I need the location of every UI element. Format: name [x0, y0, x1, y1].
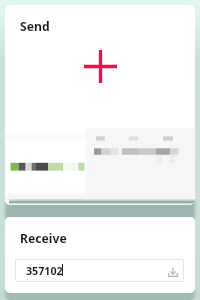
- staticText: Send: [20, 18, 50, 35]
- staticText: 357102: [26, 264, 63, 279]
- button[interactable]: Add: [84, 50, 117, 83]
- staticText: Receive: [20, 230, 67, 247]
- button[interactable]: 357102: [15, 259, 184, 282]
- button[interactable]: [5, 128, 195, 200]
- button[interactable]: Scroll table: [9, 198, 195, 205]
- button[interactable]: Download: [168, 267, 178, 277]
